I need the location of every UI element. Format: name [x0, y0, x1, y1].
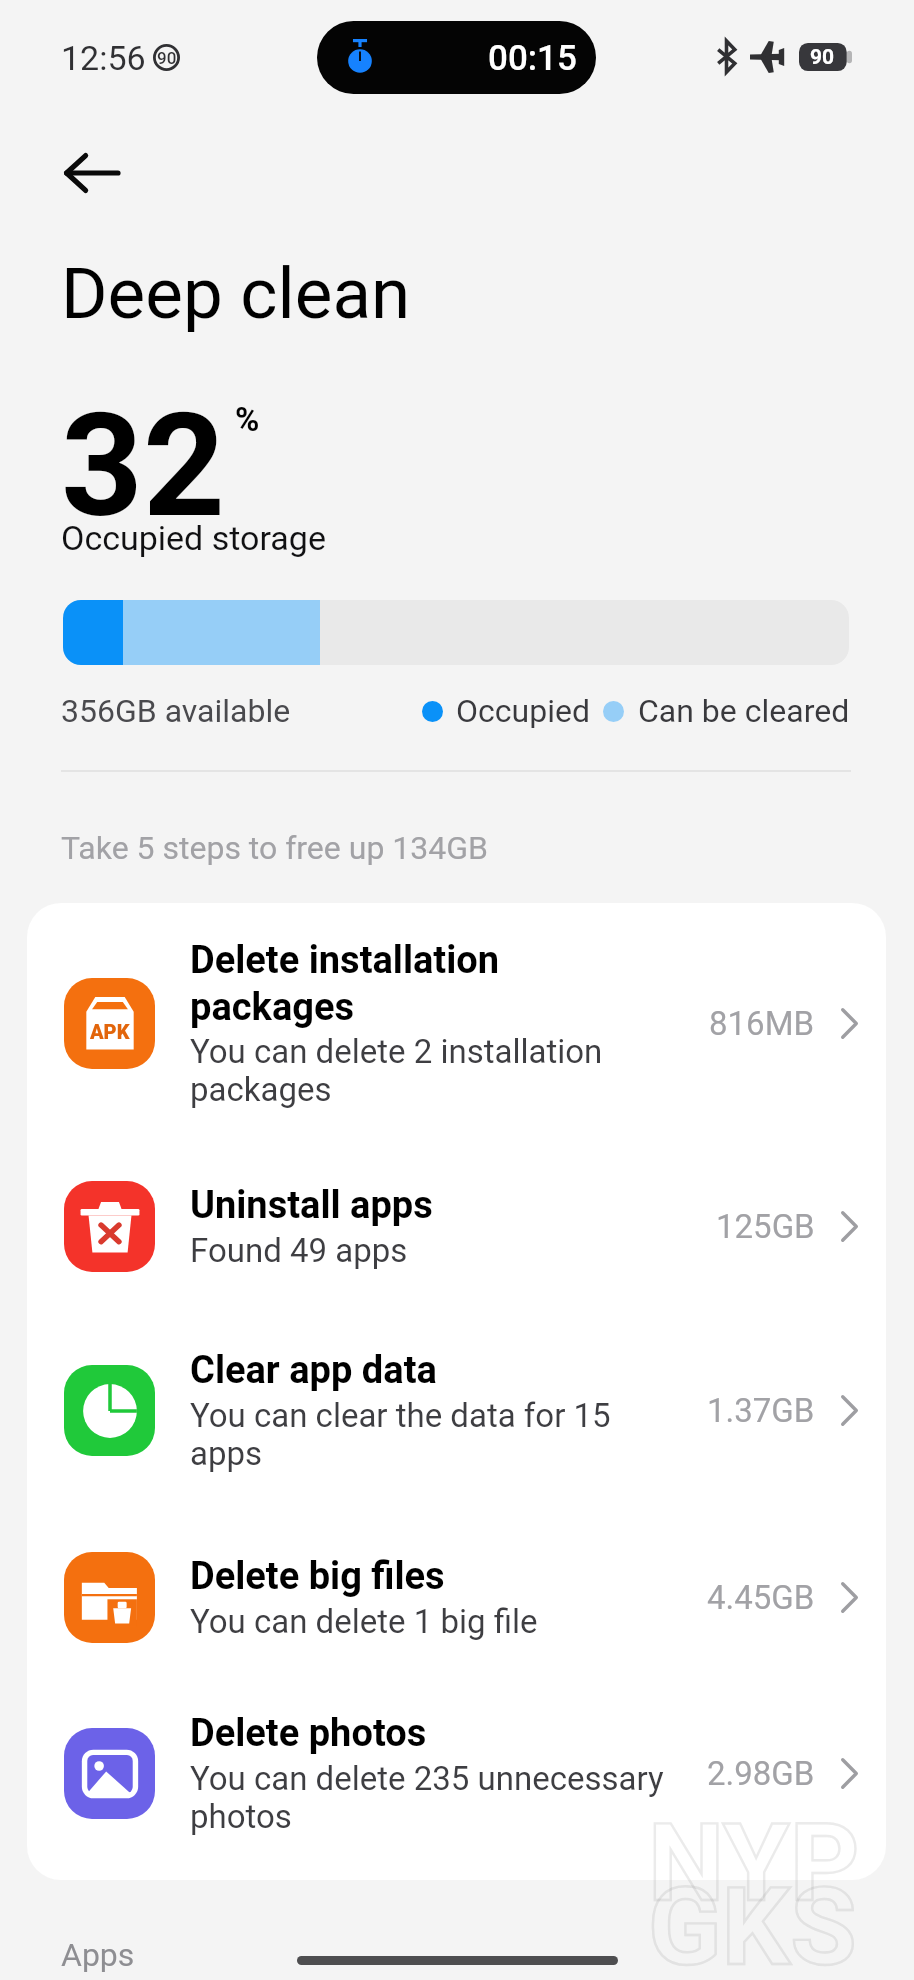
staticText: 2.98GB — [707, 1754, 815, 1793]
staticText: You can delete 2 installation packages — [190, 1032, 670, 1109]
staticText: Apps — [61, 1936, 135, 1974]
staticText: You can delete 235 unnecessary photos — [190, 1759, 670, 1836]
staticText: 12:56 — [61, 38, 146, 78]
staticText: Found 49 apps — [190, 1231, 408, 1270]
staticText: 32 — [61, 382, 226, 550]
staticText: Delete big files — [190, 1554, 445, 1599]
staticText: 125GB — [716, 1207, 815, 1246]
staticText: Take 5 steps to free up 134GB — [61, 829, 488, 867]
staticText: You can delete 1 big file — [190, 1602, 538, 1641]
button[interactable]: Delete photos — [27, 1683, 886, 1863]
staticText: Occupied storage — [61, 518, 326, 558]
staticText: You can clear the data for 15 apps — [190, 1396, 670, 1473]
staticText: APK — [90, 1020, 130, 1043]
staticText: Can be cleared — [638, 692, 850, 730]
button[interactable]: Clear app data — [27, 1309, 886, 1511]
staticText: GKS — [648, 1864, 857, 1980]
button[interactable]: Back — [56, 138, 126, 208]
staticText: 1.37GB — [707, 1391, 815, 1430]
staticText: Occupied — [456, 692, 590, 730]
button[interactable]: APK — [27, 903, 886, 1143]
button[interactable]: Uninstall apps — [27, 1143, 886, 1309]
staticText: Delete photos — [190, 1711, 427, 1756]
staticText: 4.45GB — [707, 1578, 815, 1617]
staticText: 90 — [157, 48, 177, 68]
staticText: % — [235, 400, 260, 439]
staticText: NYP — [648, 1800, 860, 1927]
button[interactable]: Delete big files — [27, 1511, 886, 1683]
staticText: Delete installation packages — [190, 938, 670, 1029]
staticText: Uninstall apps — [190, 1183, 433, 1228]
staticText: 816MB — [709, 1004, 815, 1043]
staticText: Clear app data — [190, 1348, 437, 1393]
staticText: Deep clean — [61, 252, 411, 335]
staticText: 90 — [810, 45, 835, 70]
staticText: 356GB available — [61, 692, 291, 730]
staticText: 00:15 — [488, 38, 577, 79]
